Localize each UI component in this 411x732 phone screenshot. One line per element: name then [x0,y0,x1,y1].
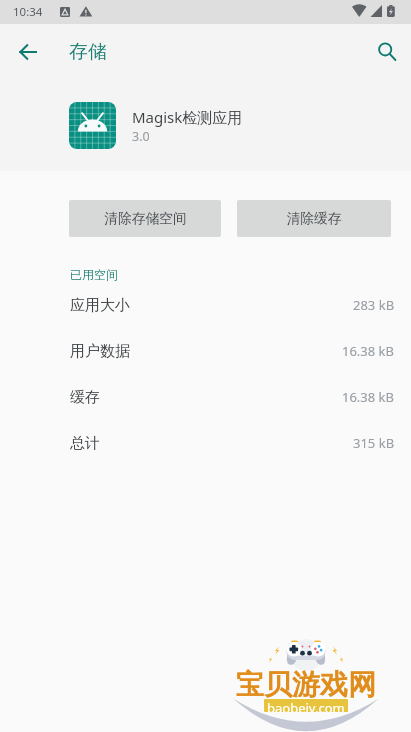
staticText: 315 kB [353,434,395,452]
staticText: 总计 [70,434,100,453]
staticText: 10:34 [13,4,43,20]
staticText: Magisk检测应用 [132,107,243,127]
staticText: 应用大小 [70,296,130,315]
staticText: 用户数据 [70,342,130,361]
button[interactable]: 总计 [0,420,411,466]
button[interactable]: 缓存 [0,374,411,420]
staticText: 已用空间 [70,267,118,282]
button[interactable]: 应用大小 [0,282,411,328]
staticText: 缓存 [70,388,100,407]
staticText: 清除缓存 [286,210,342,227]
staticText: 宝贝游戏网 [236,667,376,702]
button[interactable]: 清除存储空间 [69,200,221,237]
staticText: 存储 [69,40,107,64]
button[interactable]: Search [368,33,406,71]
button[interactable]: Back [10,34,46,70]
staticText: 3.0 [132,128,150,145]
staticText: 283 kB [353,296,395,314]
button[interactable]: 用户数据 [0,328,411,374]
staticText: 16.38 kB [342,342,395,360]
button[interactable]: 清除缓存 [237,200,391,237]
staticText: baobeiy.com [267,699,345,712]
staticText: 16.38 kB [342,388,395,406]
staticText: 清除存储空间 [104,210,187,227]
